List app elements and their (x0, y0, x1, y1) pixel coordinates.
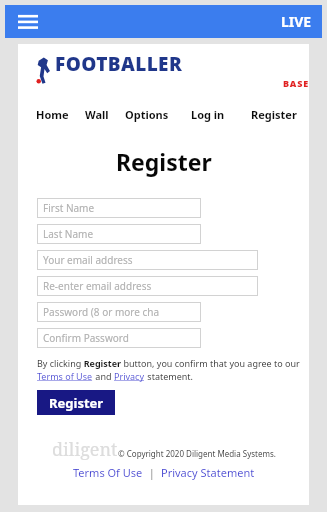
button[interactable]: Password (8 or more cha (37, 302, 201, 322)
button[interactable]: Home (36, 107, 69, 122)
button[interactable]: FOOTBALLER (36, 51, 309, 89)
button[interactable]: Terms Of Use (73, 465, 143, 480)
button[interactable]: Register (251, 107, 297, 122)
staticText: and (93, 370, 114, 382)
staticText: Wall (85, 107, 109, 122)
button[interactable]: Log in (191, 107, 225, 122)
button[interactable]: First Name (37, 198, 201, 218)
staticText: Options (125, 107, 169, 122)
button[interactable]: LIVE (281, 12, 312, 31)
staticText: LIVE (281, 12, 312, 31)
staticText: Password (8 or more cha (43, 305, 160, 319)
staticText: Terms Of Use (73, 465, 143, 480)
staticText: By clicking Register button, you confirm… (37, 357, 300, 369)
staticText: Confirm Password (43, 331, 129, 345)
staticText: Log in (191, 107, 225, 122)
button[interactable]: Register (37, 390, 115, 415)
button[interactable]: Last Name (37, 224, 201, 244)
button[interactable]: Privacy Statement (161, 465, 255, 480)
staticText: Home (36, 107, 69, 122)
staticText: Register (49, 394, 104, 412)
button[interactable]: Privacy (114, 370, 145, 382)
staticText: Register (251, 107, 297, 122)
button[interactable]: Re-enter email address (37, 276, 258, 296)
button[interactable]: Wall (85, 107, 109, 122)
staticText: © Copyright 2020 Diligent Media Systems. (118, 448, 276, 459)
button[interactable]: Open navigation menu (11, 5, 45, 38)
staticText: Privacy Statement (161, 465, 255, 480)
staticText: Your email address (43, 253, 133, 267)
button[interactable]: Options (125, 107, 169, 122)
button[interactable]: Your email address (37, 250, 258, 270)
staticText: BASE (283, 77, 309, 89)
staticText: Privacy (114, 370, 145, 382)
button[interactable]: Confirm Password (37, 328, 201, 348)
staticText: Terms of Use (37, 370, 93, 382)
staticText: Register (116, 146, 212, 177)
staticText: statement. (145, 370, 193, 382)
staticText: diligent (52, 437, 118, 462)
staticText: FOOTBALLER (55, 51, 183, 77)
staticText: Re-enter email address (43, 279, 152, 293)
staticText: | (143, 465, 161, 480)
staticText: Last Name (43, 227, 94, 241)
button[interactable]: Terms of Use (37, 370, 93, 382)
staticText: First Name (43, 201, 95, 215)
